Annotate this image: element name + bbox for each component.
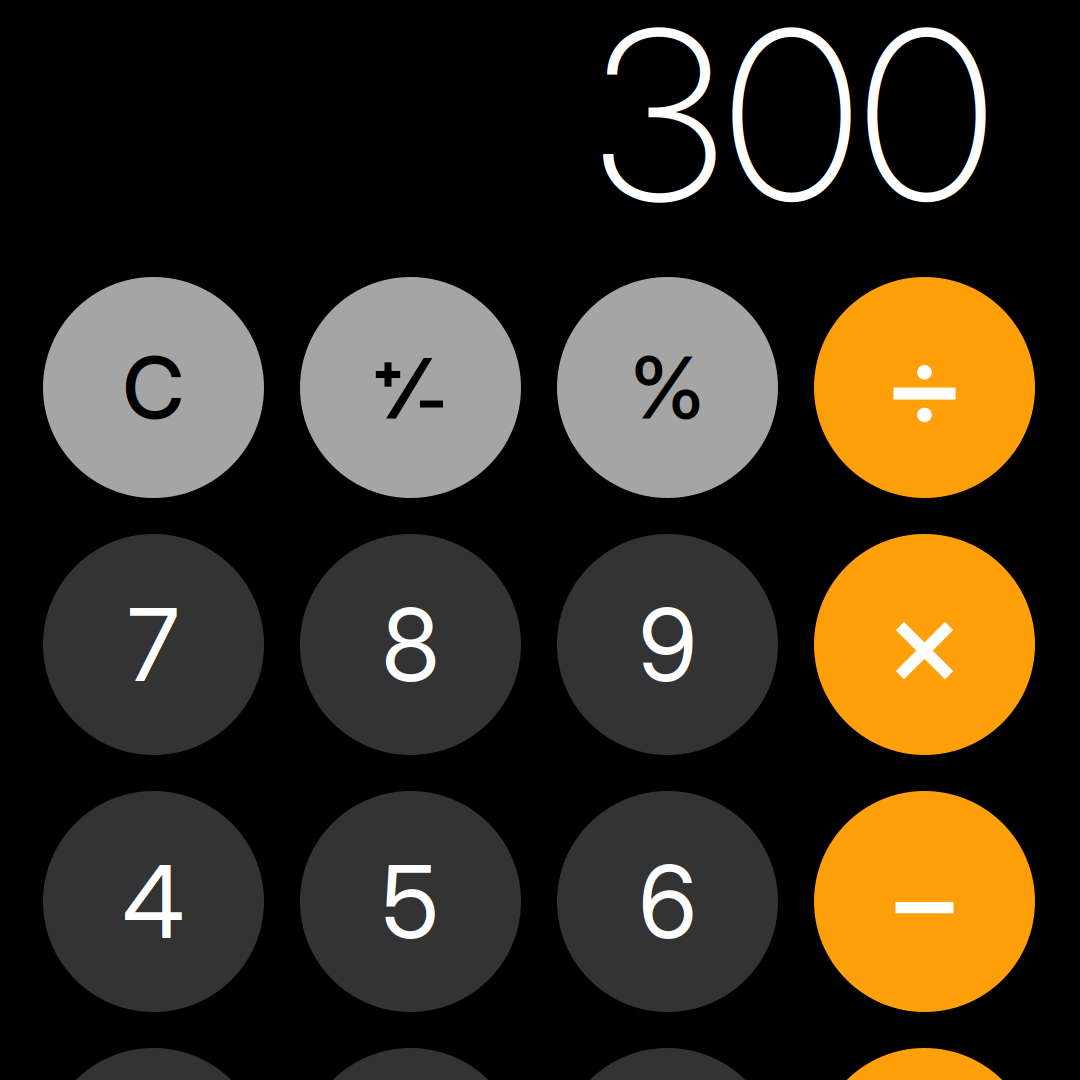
button[interactable]: 9 [557, 534, 778, 755]
button[interactable]: 2 [300, 1048, 521, 1080]
button[interactable]: 7 [43, 534, 264, 755]
staticText: 8 [381, 584, 439, 705]
staticText: 6 [638, 841, 696, 962]
button[interactable]: C [43, 277, 264, 498]
staticText: 9 [638, 584, 696, 705]
staticText: C [122, 336, 184, 439]
staticText: 5 [381, 841, 439, 962]
button[interactable]: % [557, 277, 778, 498]
button[interactable]: 6 [557, 791, 778, 1012]
button[interactable]: 1 [43, 1048, 264, 1080]
staticText: 7 [127, 584, 179, 705]
button[interactable]: Plus or minus [300, 277, 521, 498]
button[interactable]: 3 [557, 1048, 778, 1080]
button[interactable]: 4 [43, 791, 264, 1012]
button[interactable]: Add [814, 1048, 1035, 1080]
button[interactable]: 8 [300, 534, 521, 755]
button[interactable]: Divide [814, 277, 1035, 498]
staticText: 300 [594, 0, 994, 257]
button[interactable]: 5 [300, 791, 521, 1012]
staticText: 4 [122, 841, 184, 962]
button[interactable]: Subtract [814, 791, 1035, 1012]
button[interactable]: Multiply [814, 534, 1035, 755]
staticText: % [630, 336, 705, 439]
